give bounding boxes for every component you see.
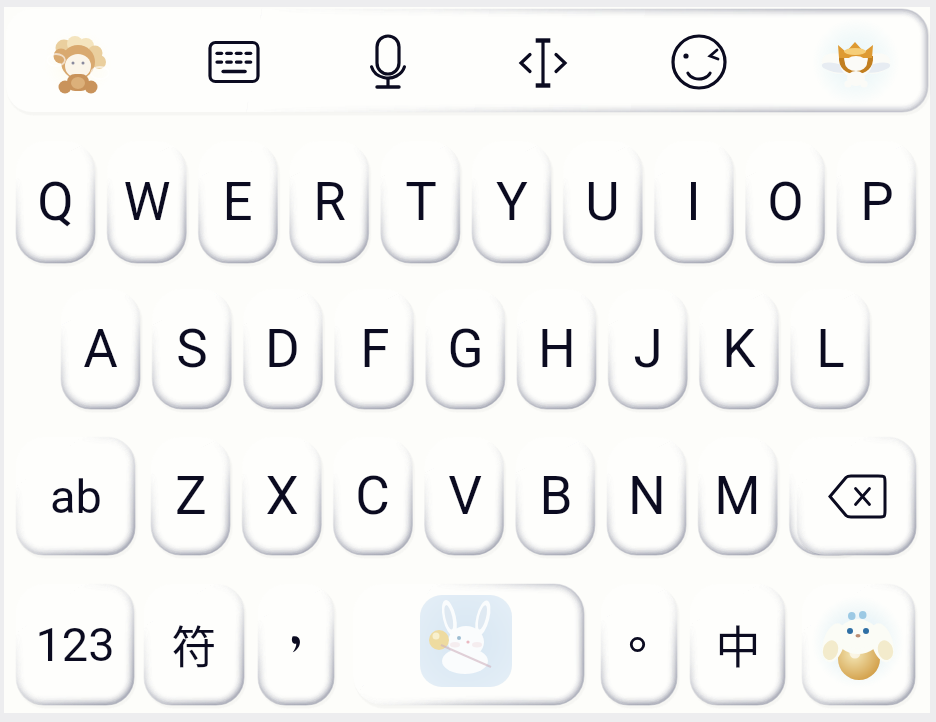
button[interactable]: Y: [472, 141, 551, 263]
button[interactable]: H: [517, 289, 596, 409]
staticText: U: [585, 171, 620, 233]
button[interactable]: J: [608, 289, 687, 409]
button[interactable]: P: [837, 141, 916, 263]
button[interactable]: M: [698, 437, 777, 555]
button[interactable]: A: [61, 289, 140, 409]
button[interactable]: S: [152, 289, 231, 409]
staticText: 123: [35, 617, 115, 672]
button[interactable]: Z: [151, 437, 230, 555]
button[interactable]: K: [699, 289, 778, 409]
button[interactable]: Keyboard layout: [180, 14, 290, 108]
staticText: G: [447, 318, 484, 380]
button[interactable]: 中: [690, 584, 785, 705]
button[interactable]: Emoji: [645, 14, 755, 108]
staticText: D: [265, 318, 300, 380]
button[interactable]: ab: [16, 437, 135, 555]
staticText: B: [539, 465, 573, 527]
button[interactable]: Backspace: [797, 437, 916, 555]
staticText: P: [860, 171, 894, 233]
button[interactable]: Q: [16, 141, 95, 263]
staticText: C: [355, 465, 390, 527]
staticText: W: [123, 171, 171, 233]
button[interactable]: D: [243, 289, 322, 409]
button[interactable]: N: [607, 437, 686, 555]
staticText: L: [816, 318, 845, 380]
button[interactable]: Move cursor: [490, 14, 600, 108]
staticText: V: [448, 465, 482, 527]
staticText: A: [83, 318, 118, 380]
button[interactable]: 123: [16, 584, 134, 705]
staticText: K: [722, 318, 756, 380]
button[interactable]: Comma: [258, 584, 334, 705]
button[interactable]: 符: [144, 584, 244, 705]
staticText: S: [176, 318, 208, 380]
button[interactable]: I: [654, 141, 733, 263]
button[interactable]: C: [333, 437, 412, 555]
staticText: E: [222, 171, 253, 233]
staticText: Z: [175, 465, 207, 527]
button[interactable]: O: [746, 141, 825, 263]
staticText: ab: [50, 469, 102, 524]
button[interactable]: F: [335, 289, 414, 409]
button[interactable]: G: [426, 289, 505, 409]
button[interactable]: L: [791, 289, 870, 409]
button[interactable]: E: [198, 141, 277, 263]
staticText: M: [714, 465, 761, 527]
staticText: X: [265, 465, 299, 527]
button[interactable]: U: [563, 141, 642, 263]
staticText: O: [767, 171, 804, 233]
button[interactable]: X: [242, 437, 321, 555]
staticText: F: [360, 318, 390, 380]
staticText: R: [313, 171, 346, 233]
staticText: H: [538, 318, 576, 380]
staticText: 中: [715, 612, 761, 677]
staticText: T: [405, 171, 437, 233]
staticText: I: [686, 171, 701, 233]
staticText: Y: [496, 171, 528, 233]
button[interactable]: Voice input: [335, 14, 445, 108]
button[interactable]: W: [107, 141, 186, 263]
button[interactable]: Theme: [802, 584, 915, 705]
staticText: 符: [171, 612, 217, 677]
button[interactable]: V: [425, 437, 504, 555]
button[interactable]: R: [290, 141, 369, 263]
button[interactable]: Space: [353, 584, 584, 705]
button[interactable]: Period: [601, 584, 677, 705]
button[interactable]: B: [516, 437, 595, 555]
button[interactable]: Assistant: [20, 14, 140, 108]
staticText: Q: [37, 171, 74, 233]
button[interactable]: Sticker: [800, 14, 915, 108]
button[interactable]: T: [381, 141, 460, 263]
staticText: J: [633, 318, 663, 380]
staticText: N: [628, 465, 666, 527]
